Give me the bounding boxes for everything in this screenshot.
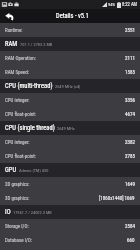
staticText: 2785 (125, 153, 135, 159)
button[interactable]: CPU (single thread) (0, 121, 140, 135)
button[interactable]: RAM (0, 37, 140, 51)
staticText: 660 (127, 237, 135, 243)
staticText: Storage I/O: (5, 223, 29, 229)
button[interactable]: RAM Speed: (0, 65, 140, 79)
staticText: 2584 (125, 223, 135, 229)
staticText: Details - v5.1 (56, 12, 89, 20)
staticText: 4674 (125, 111, 135, 117)
staticText: 3356 (125, 97, 135, 103)
button[interactable]: Database I/O: (0, 233, 140, 247)
staticText: 1585 (125, 69, 135, 75)
staticText: 17941.7 / 24002.3 MB (13, 210, 52, 215)
button[interactable]: CPU integer: (0, 135, 140, 149)
staticText: CPU float-point: (5, 153, 36, 159)
button[interactable]: 3D graphics: (0, 191, 140, 205)
button[interactable]: CPU float-point: (0, 107, 140, 121)
staticText: CPU float-point: (5, 111, 36, 117)
staticText: RAM Speed: (5, 69, 29, 75)
staticText: IO (5, 208, 11, 216)
staticText: [1860x1440] 1669 (99, 195, 135, 201)
button[interactable]: CPU integer: (0, 93, 140, 107)
button[interactable]: GPU (0, 163, 140, 177)
staticText: 2649 MHz (x4) (55, 84, 81, 89)
staticText: 2382 (125, 139, 135, 145)
staticText: 94% (108, 2, 116, 7)
button[interactable]: RAM Operation: (0, 51, 140, 65)
staticText: 3D graphics: (5, 195, 30, 201)
staticText: 2D graphics: (5, 181, 30, 187)
button[interactable]: IO (0, 205, 140, 219)
button[interactable]: Storage I/O: (0, 219, 140, 233)
button[interactable]: Back (0, 9, 18, 23)
staticText: 2649 MHz (57, 126, 75, 131)
staticText: Runtime: (5, 27, 23, 33)
button[interactable]: CPU float-point: (0, 149, 140, 163)
button[interactable]: Runtime: (0, 23, 140, 37)
staticText: CPU integer: (5, 139, 30, 145)
staticText: RAM (5, 40, 18, 48)
staticText: RAM Operation: (5, 55, 36, 61)
staticText: 1649 (125, 181, 135, 187)
staticText: Adreno (TM) 430 (19, 168, 49, 173)
staticText: GPU (5, 166, 17, 174)
staticText: 8:22 AM (122, 2, 138, 7)
staticText: 2111 (125, 55, 135, 61)
staticText: 2551 (125, 27, 135, 33)
staticText: CPU integer: (5, 97, 30, 103)
staticText: 707.1 / 2783.3 MB (20, 42, 53, 47)
button[interactable]: 2D graphics: (0, 177, 140, 191)
staticText: CPU (single thread) (5, 124, 55, 132)
staticText: CPU (multi-thread) (5, 82, 53, 90)
staticText: Database I/O: (5, 237, 33, 243)
button[interactable]: CPU (multi-thread) (0, 79, 140, 93)
